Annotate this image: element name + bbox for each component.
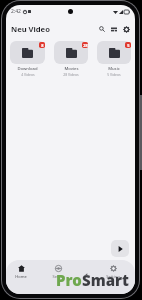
staticText: 4 Videos	[21, 72, 35, 77]
staticText: Download	[17, 66, 38, 72]
button[interactable]: 28	[54, 41, 88, 77]
staticText: Music	[108, 66, 120, 72]
staticText: 8	[41, 43, 44, 48]
button[interactable]: Search	[96, 23, 108, 35]
staticText: 2:42	[11, 8, 21, 15]
staticText: 28 Videos	[63, 72, 79, 77]
staticText: Pro	[56, 270, 82, 290]
button[interactable]: View mode	[108, 23, 120, 35]
button[interactable]: 8	[10, 41, 45, 77]
staticText: 5 Videos	[107, 72, 121, 77]
staticText: Server	[52, 274, 65, 279]
staticText: Smart	[82, 270, 129, 290]
staticText: Setting	[106, 274, 120, 279]
staticText: 28	[83, 43, 88, 48]
button[interactable]: Play	[111, 240, 129, 257]
staticText: Movies	[64, 66, 79, 72]
button[interactable]: Setting	[103, 265, 123, 279]
button[interactable]: Settings	[120, 23, 132, 35]
staticText: Home	[15, 274, 27, 279]
staticText: Neu Video	[11, 24, 50, 34]
button[interactable]: Server	[48, 265, 68, 279]
staticText: 5	[127, 43, 130, 48]
button[interactable]: Home	[11, 265, 31, 279]
button[interactable]: 5	[97, 41, 131, 77]
